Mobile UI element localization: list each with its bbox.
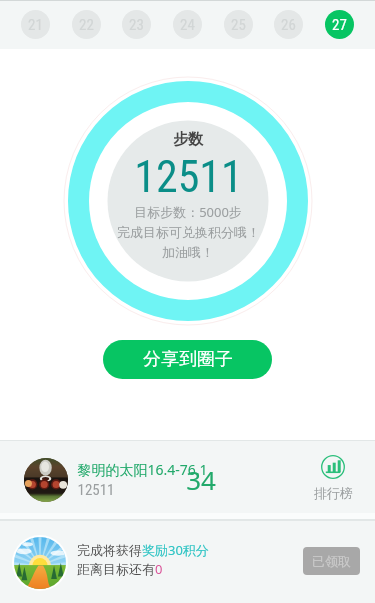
staticText: 分享到圈子 bbox=[143, 348, 233, 371]
button[interactable]: 21 bbox=[21, 10, 50, 39]
staticText: 21 bbox=[28, 16, 43, 34]
button[interactable]: 完成将获得奖励30积分 bbox=[0, 521, 375, 603]
button[interactable]: 24 bbox=[173, 10, 202, 39]
button[interactable]: 已领取 bbox=[303, 547, 360, 575]
staticText: 27 bbox=[332, 16, 347, 34]
button[interactable]: 排行榜 bbox=[304, 455, 362, 501]
button[interactable]: 22 bbox=[72, 10, 101, 39]
staticText: 34 bbox=[186, 462, 216, 497]
staticText: 距离目标还有0 bbox=[77, 560, 163, 578]
staticText: 目标步数：5000步 bbox=[134, 203, 242, 221]
staticText: 已领取 bbox=[312, 553, 351, 569]
other: 排行榜 bbox=[321, 455, 345, 479]
staticText: 黎明的太阳16.4-76.1 bbox=[77, 460, 208, 479]
staticText: 26 bbox=[281, 16, 296, 34]
staticText: 23 bbox=[129, 16, 144, 34]
button[interactable]: 26 bbox=[274, 10, 303, 39]
button[interactable]: 27 bbox=[325, 10, 354, 39]
button[interactable]: 分享到圈子 bbox=[103, 340, 272, 379]
staticText: 25 bbox=[231, 16, 246, 34]
staticText: 12511 bbox=[77, 481, 115, 499]
staticText: 步数 bbox=[173, 130, 203, 149]
staticText: 24 bbox=[180, 16, 195, 34]
staticText: 完成将获得奖励30积分 bbox=[77, 541, 209, 559]
staticText: 完成目标可兑换积分哦！ bbox=[117, 224, 260, 240]
button[interactable]: 23 bbox=[122, 10, 151, 39]
button[interactable]: 25 bbox=[224, 10, 253, 39]
staticText: 22 bbox=[79, 16, 94, 34]
staticText: 12511 bbox=[134, 151, 243, 203]
staticText: 排行榜 bbox=[314, 485, 353, 501]
button[interactable]: 黎明的太阳16.4-76.1 bbox=[0, 441, 375, 514]
staticText: 加油哦！ bbox=[162, 244, 214, 260]
